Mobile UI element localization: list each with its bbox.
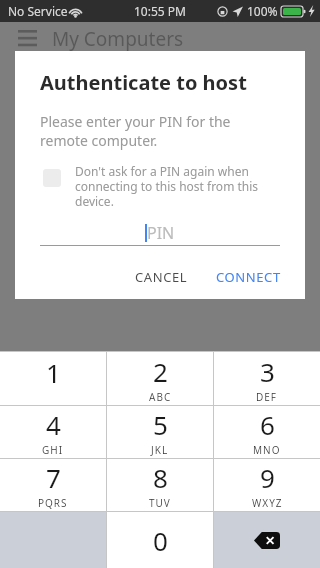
button[interactable]: Backspace — [214, 512, 320, 568]
button[interactable]: 5 — [107, 406, 213, 458]
button[interactable]: 2 — [107, 352, 213, 405]
staticText: 0 — [153, 523, 168, 558]
staticText: Authenticate to host — [40, 69, 247, 96]
staticText: My Computers — [52, 26, 184, 52]
staticText: 100% — [247, 3, 278, 19]
button[interactable]: 4 — [0, 406, 106, 458]
button[interactable]: 3 — [214, 352, 320, 405]
staticText: No Service — [8, 3, 68, 19]
staticText: WXYZ — [252, 496, 283, 510]
staticText: MNO — [253, 443, 281, 457]
staticText: 8 — [153, 460, 168, 495]
button[interactable]: 7 — [0, 459, 106, 511]
button[interactable]: 0 — [107, 512, 213, 568]
staticText: 3 — [260, 354, 275, 389]
button[interactable]: 8 — [107, 459, 213, 511]
staticText: ABC — [149, 390, 172, 404]
staticText: 4 — [46, 407, 61, 442]
staticText: PIN — [147, 222, 175, 244]
button[interactable]: Open navigation menu — [12, 24, 42, 54]
staticText: GHI — [42, 443, 64, 457]
staticText: CANCEL — [135, 268, 188, 286]
button[interactable]: 1 — [0, 352, 106, 405]
button[interactable]: Don't ask for a PIN again when connectin… — [15, 163, 305, 209]
button[interactable]: CONNECT — [206, 262, 291, 292]
staticText: JKL — [151, 443, 169, 457]
button[interactable]: 9 — [214, 459, 320, 511]
button[interactable]: 6 — [214, 406, 320, 458]
staticText: 10:55 PM — [134, 3, 186, 19]
staticText: 6 — [260, 407, 275, 442]
button[interactable]: CANCEL — [125, 262, 198, 292]
staticText: 9 — [260, 460, 275, 495]
staticText: CONNECT — [216, 268, 281, 286]
staticText: PQRS — [38, 496, 68, 510]
staticText: Please enter your PIN for the remote com… — [40, 112, 281, 150]
staticText: 1 — [46, 355, 61, 390]
staticText: 5 — [153, 407, 168, 442]
staticText: TUV — [149, 496, 171, 510]
staticText: 7 — [46, 460, 61, 495]
staticText: Don't ask for a PIN again when connectin… — [75, 163, 281, 209]
staticText: 2 — [153, 354, 168, 389]
staticText: DEF — [256, 390, 278, 404]
